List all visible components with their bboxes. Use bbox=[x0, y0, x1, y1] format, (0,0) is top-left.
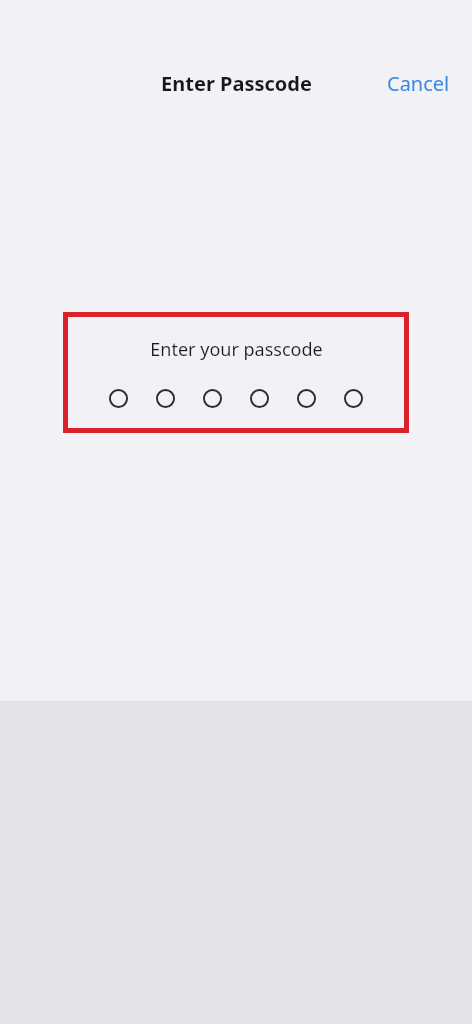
button[interactable]: Enter Passcode bbox=[0, 70, 472, 97]
button[interactable]: Cancel bbox=[365, 62, 472, 105]
staticText: Enter Passcode bbox=[161, 70, 312, 97]
staticText: Enter your passcode bbox=[150, 337, 323, 362]
staticText: Cancel bbox=[387, 70, 450, 97]
button[interactable]: Enter your passcode bbox=[63, 312, 409, 433]
